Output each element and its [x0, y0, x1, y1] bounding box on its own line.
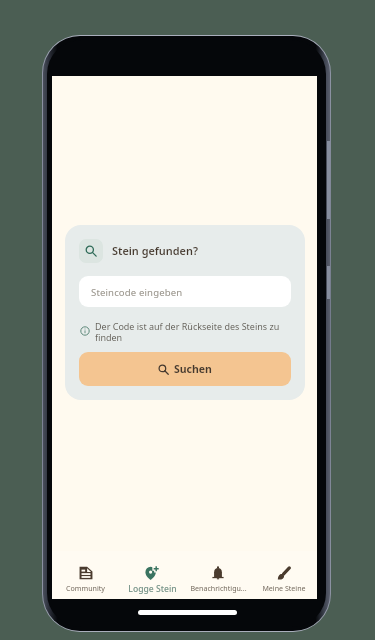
staticText: Stein gefunden?: [112, 243, 198, 258]
staticText: Logge Stein: [128, 583, 177, 595]
button[interactable]: Suchen: [79, 352, 291, 386]
staticText: Suchen: [174, 362, 212, 376]
button[interactable]: Stein suchen: [79, 239, 103, 263]
button[interactable]: Benachrichtigu...: [185, 551, 251, 599]
staticText: Meine Steine: [262, 583, 306, 593]
staticText: Steincode eingeben: [91, 286, 183, 299]
staticText: Der Code ist auf der Rückseite des Stein…: [95, 320, 285, 343]
button[interactable]: Logge Stein: [119, 551, 185, 599]
button[interactable]: Meine Steine: [251, 551, 317, 599]
staticText: Benachrichtigu...: [190, 583, 247, 593]
button[interactable]: Steincode eingeben: [79, 276, 291, 307]
staticText: Community: [66, 583, 105, 593]
button[interactable]: Community: [52, 551, 119, 599]
